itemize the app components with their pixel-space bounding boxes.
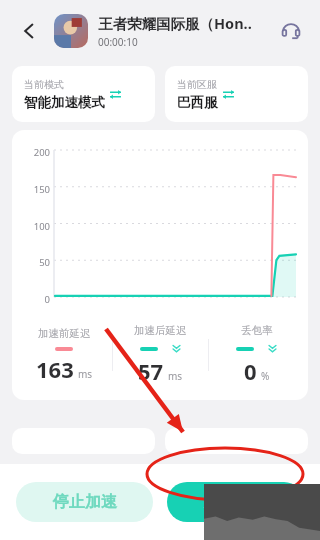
staticText: 停止加速 [53, 492, 117, 512]
staticText: 智能加速模式 [24, 94, 105, 111]
staticText: 150 [33, 183, 50, 195]
button[interactable]: Back [12, 13, 48, 49]
staticText: 200 [33, 146, 50, 158]
button[interactable]: Customer service [274, 14, 308, 48]
staticText: 当前区服 [177, 78, 217, 91]
staticText: 00:00:10 [98, 35, 138, 49]
staticText: 加速前延迟 [38, 327, 91, 340]
staticText: 100 [33, 220, 50, 232]
staticText: 王者荣耀国际服（Hon.. [98, 13, 252, 33]
staticText: 57 [138, 356, 164, 386]
button[interactable]: 当前区服 [165, 66, 308, 122]
button[interactable]: 当前模式 [12, 66, 155, 122]
button[interactable]: 停止加速 [16, 482, 153, 522]
staticText: % [261, 369, 270, 383]
button[interactable]: 加速后延迟 [113, 315, 208, 395]
button[interactable]: 加速前延迟 [16, 315, 112, 395]
button[interactable]: 丢包率 [209, 315, 304, 395]
staticText: ms [78, 367, 93, 381]
staticText: 163 [36, 354, 74, 384]
staticText: 当前模式 [24, 78, 64, 91]
staticText: 50 [39, 256, 50, 268]
staticText: 巴西服 [177, 94, 218, 111]
staticText: 丢包率 [241, 324, 273, 337]
staticText: ms [168, 369, 183, 383]
staticText: 加速后延迟 [134, 324, 187, 337]
button[interactable]: 启动游戏 [167, 482, 304, 522]
staticText: 0 [244, 356, 257, 386]
staticText: 0 [44, 293, 50, 305]
